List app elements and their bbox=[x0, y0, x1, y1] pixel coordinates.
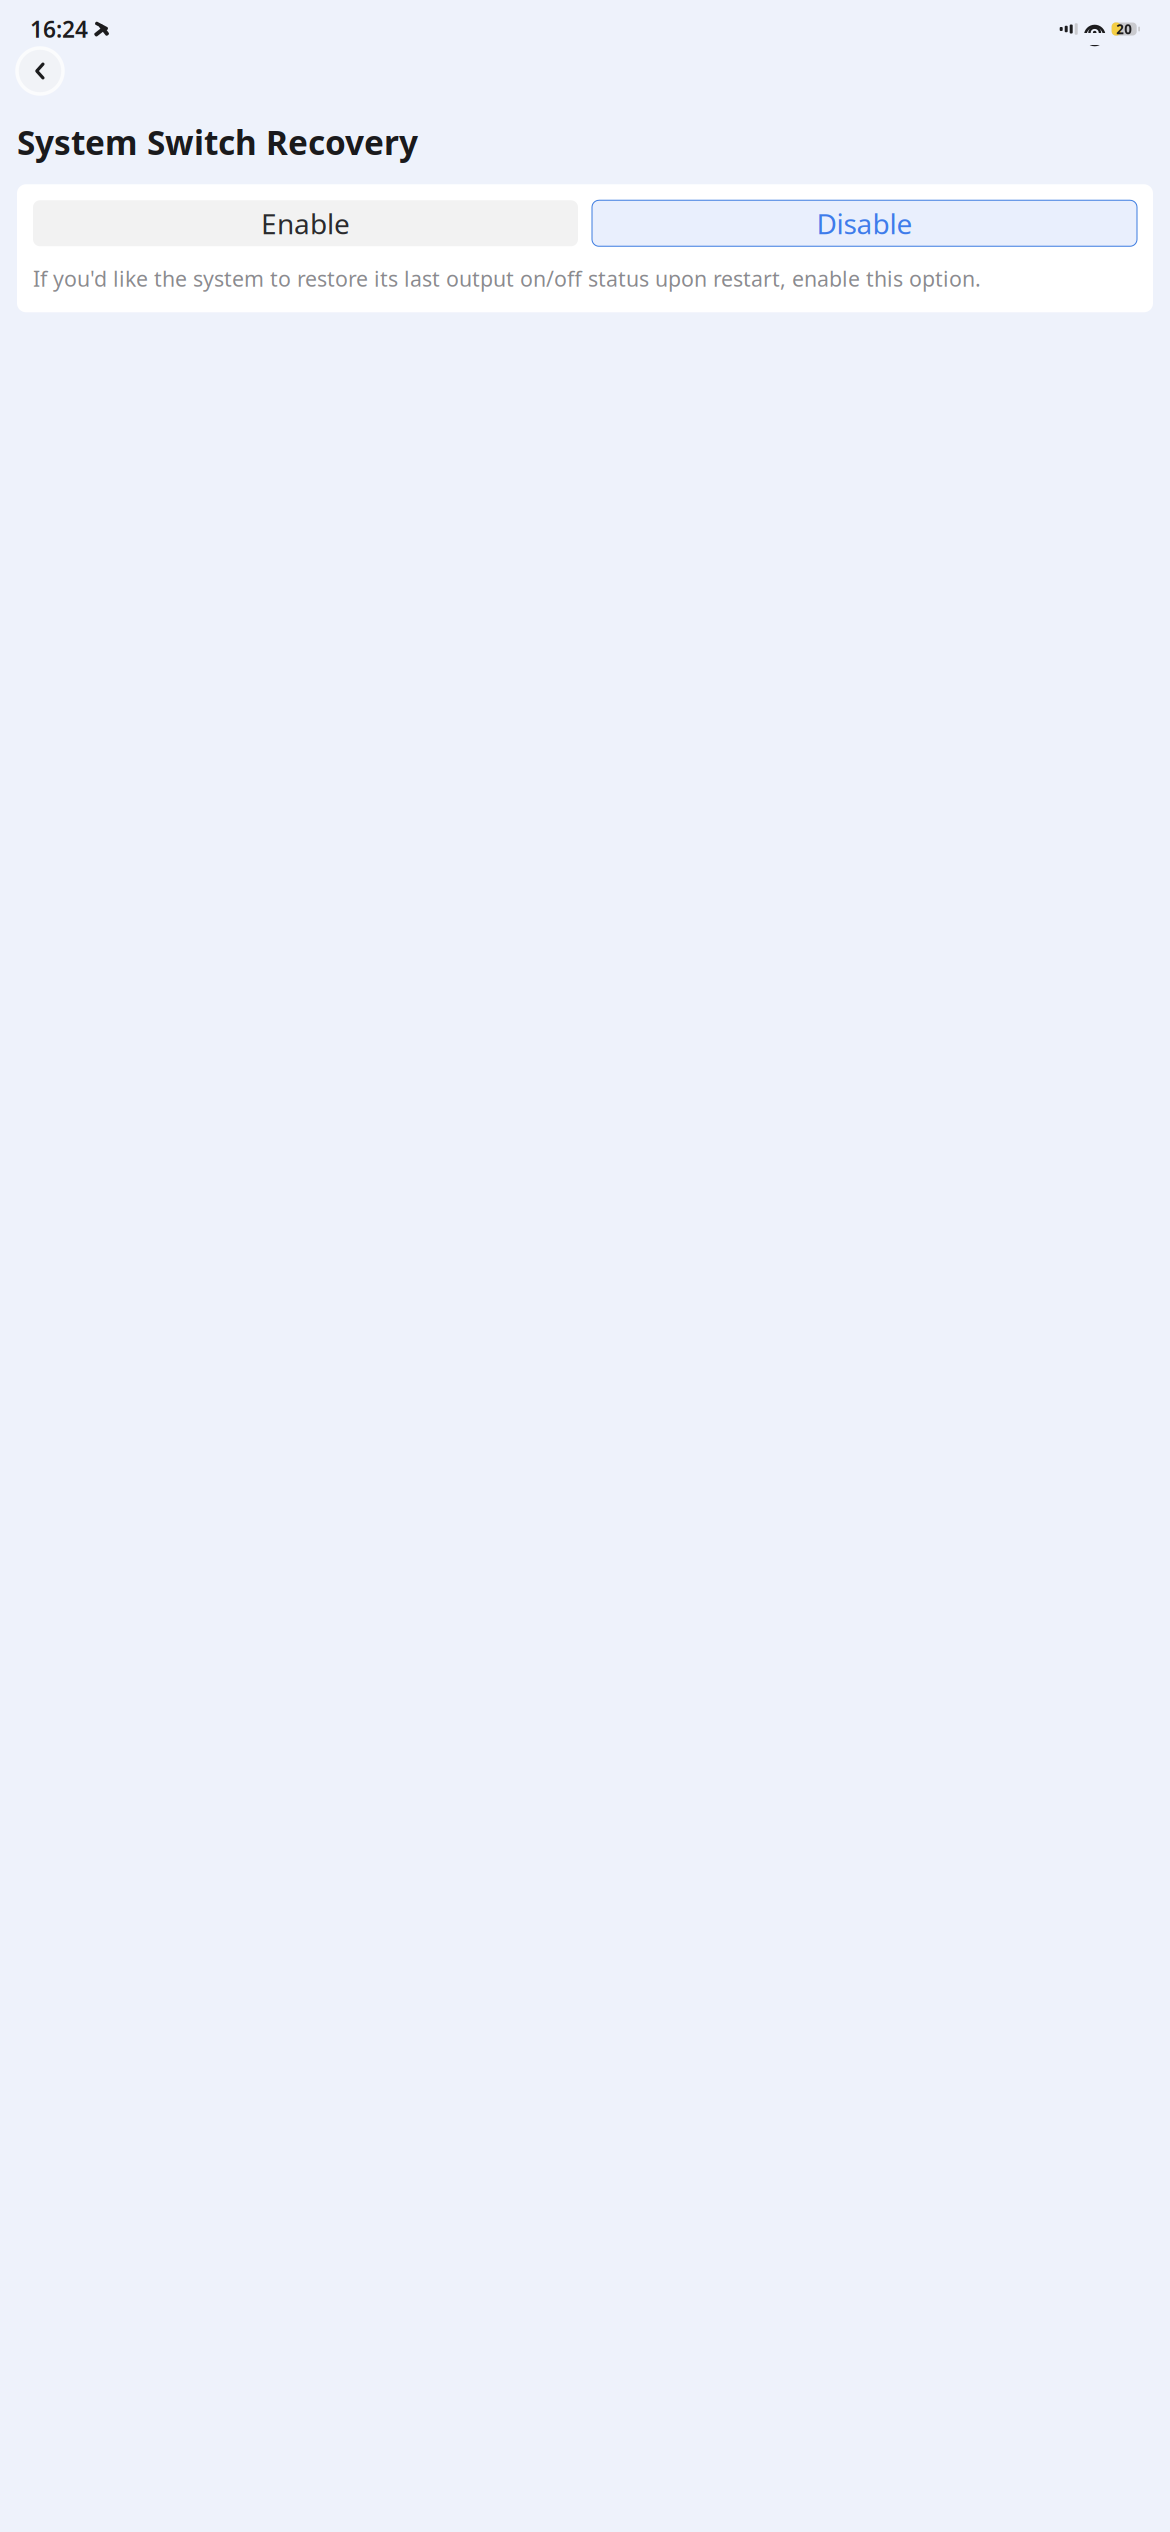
button[interactable]: Enable bbox=[33, 200, 578, 246]
button[interactable]: Disable bbox=[592, 200, 1137, 246]
staticText: 16:24 bbox=[30, 14, 88, 44]
staticText: System Switch Recovery bbox=[17, 120, 418, 164]
staticText: Disable bbox=[816, 205, 912, 242]
staticText: 20 bbox=[1116, 20, 1132, 38]
staticText: If you'd like the system to restore its … bbox=[33, 264, 981, 293]
button[interactable]: Back bbox=[17, 48, 63, 94]
staticText: Enable bbox=[261, 205, 350, 242]
